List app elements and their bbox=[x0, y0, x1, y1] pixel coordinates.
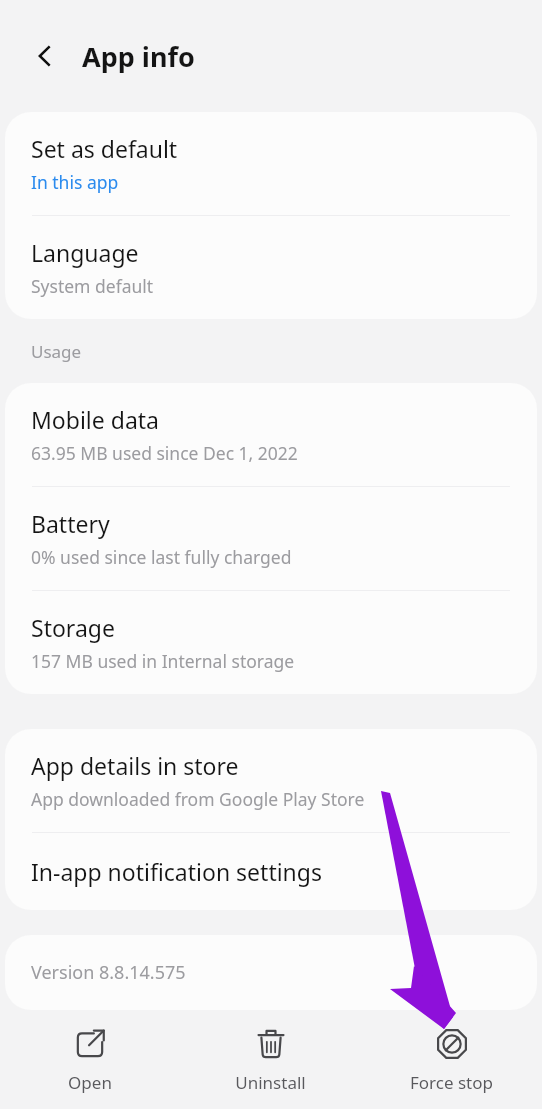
button[interactable]: Uninstall bbox=[180, 1012, 361, 1109]
button[interactable]: Back bbox=[21, 32, 69, 80]
staticText: Language bbox=[31, 237, 139, 268]
staticText: App info bbox=[82, 38, 195, 75]
button[interactable]: Set as default bbox=[5, 112, 537, 215]
staticText: In this app bbox=[31, 170, 119, 194]
staticText: In-app notification settings bbox=[31, 856, 322, 887]
staticText: System default bbox=[31, 274, 154, 298]
button[interactable]: Storage bbox=[5, 591, 537, 694]
staticText: Storage bbox=[31, 612, 115, 643]
staticText: Uninstall bbox=[235, 1071, 306, 1094]
staticText: App downloaded from Google Play Store bbox=[31, 787, 365, 811]
staticText: Version 8.8.14.575 bbox=[31, 960, 186, 985]
staticText: Usage bbox=[31, 340, 82, 363]
staticText: 0% used since last fully charged bbox=[31, 545, 292, 569]
staticText: 63.95 MB used since Dec 1, 2022 bbox=[31, 441, 298, 465]
button[interactable]: In-app notification settings bbox=[5, 833, 537, 910]
staticText: Set as default bbox=[31, 133, 178, 164]
staticText: App details in store bbox=[31, 750, 239, 781]
button[interactable]: Battery bbox=[5, 487, 537, 590]
button[interactable]: Force stop bbox=[361, 1012, 542, 1109]
button[interactable]: Open bbox=[0, 1012, 180, 1109]
button[interactable]: Version 8.8.14.575 bbox=[5, 935, 537, 1010]
button[interactable]: Language bbox=[5, 216, 537, 319]
staticText: Open bbox=[68, 1071, 112, 1094]
staticText: Force stop bbox=[410, 1071, 493, 1094]
staticText: Battery bbox=[31, 508, 110, 539]
staticText: Mobile data bbox=[31, 404, 159, 435]
button[interactable]: Mobile data bbox=[5, 383, 537, 486]
button[interactable]: App details in store bbox=[5, 729, 537, 832]
staticText: 157 MB used in Internal storage bbox=[31, 649, 295, 673]
